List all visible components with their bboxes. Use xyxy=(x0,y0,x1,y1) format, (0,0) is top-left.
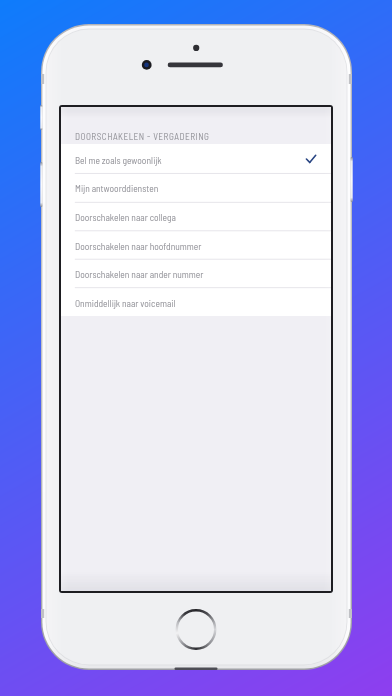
staticText: Onmiddellijk naar voicemail xyxy=(75,297,176,308)
staticText: DOORSCHAKELEN - VERGADERING xyxy=(75,131,210,142)
staticText: Mijn antwoorddiensten xyxy=(75,182,159,193)
other: Selected xyxy=(306,154,316,164)
staticText: Bel me zoals gewoonlijk xyxy=(75,154,162,165)
button[interactable]: Onmiddellijk naar voicemail xyxy=(61,288,331,316)
button[interactable]: Bel me zoals gewoonlijk xyxy=(61,144,331,174)
button[interactable]: Doorschakelen naar ander nummer xyxy=(61,259,331,288)
button[interactable]: Doorschakelen naar collega xyxy=(61,202,331,231)
staticText: Doorschakelen naar collega xyxy=(75,211,176,222)
staticText: Doorschakelen naar hoofdnummer xyxy=(75,240,202,251)
staticText: Doorschakelen naar ander nummer xyxy=(75,268,204,279)
button[interactable]: Doorschakelen naar hoofdnummer xyxy=(61,231,331,259)
button[interactable]: Mijn antwoorddiensten xyxy=(61,173,331,202)
